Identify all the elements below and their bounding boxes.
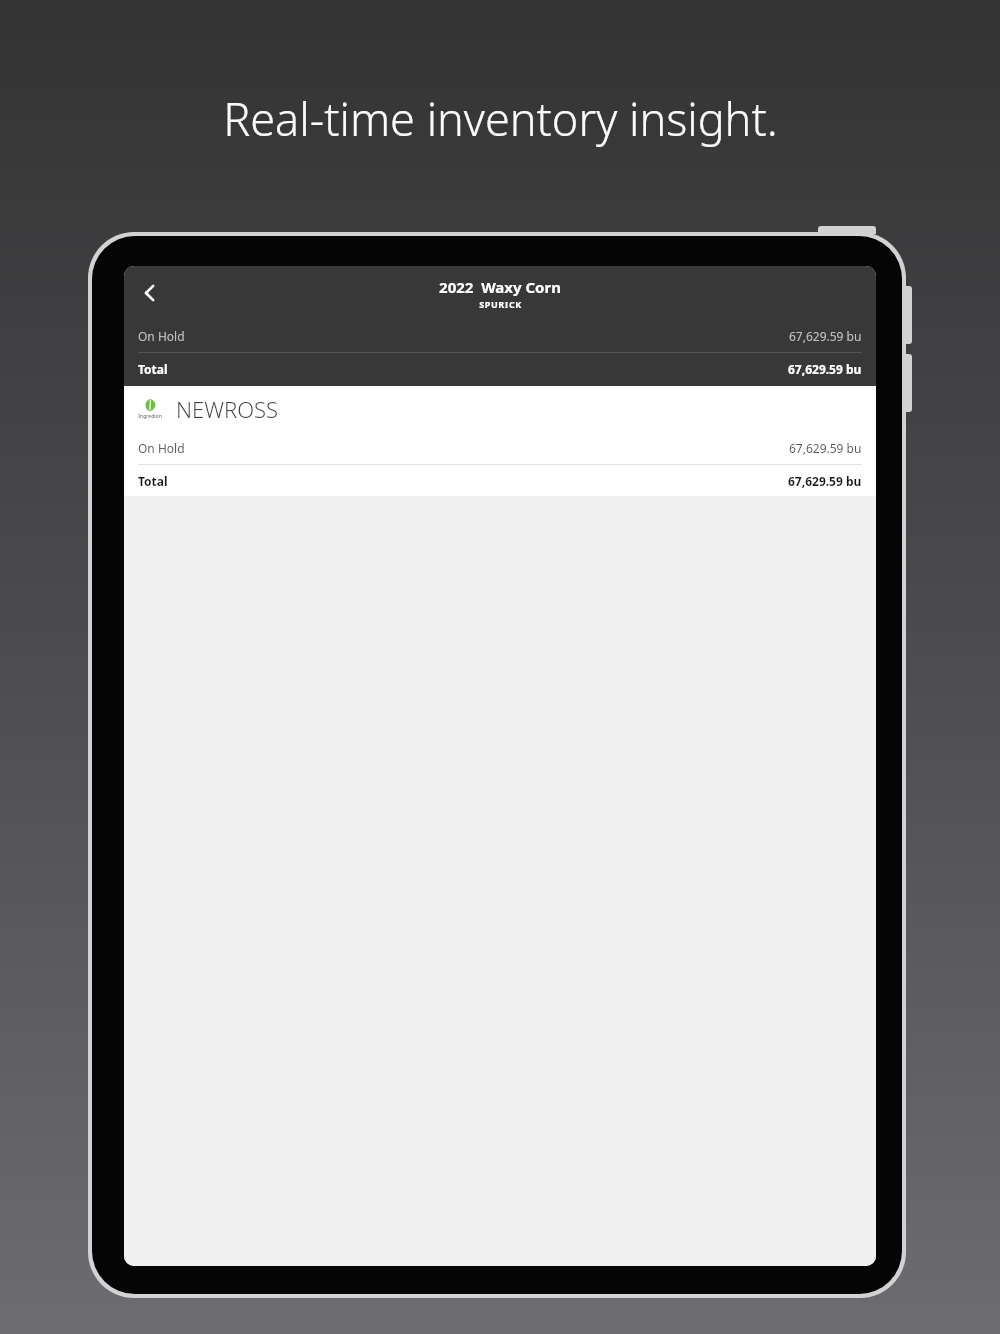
button[interactable]: Back	[128, 271, 172, 315]
staticText: Ingredion	[138, 413, 162, 420]
staticText: 2022 Waxy Corn	[439, 277, 561, 297]
staticText: Real-time inventory insight.	[223, 88, 778, 149]
staticText: SPURICK	[479, 298, 522, 310]
staticText: NEWROSS	[176, 394, 279, 424]
button[interactable]: On Hold	[124, 320, 876, 352]
button[interactable]: On Hold	[124, 432, 876, 464]
staticText: Total	[138, 361, 168, 377]
staticText: On Hold	[138, 440, 185, 456]
button[interactable]: Total	[124, 465, 876, 496]
staticText: On Hold	[138, 328, 185, 344]
button[interactable]: Ingredion	[124, 386, 876, 432]
staticText: 67,629.59 bu	[788, 473, 862, 489]
staticText: 67,629.59 bu	[789, 328, 862, 344]
staticText: Total	[138, 473, 168, 489]
button[interactable]: Total	[124, 353, 876, 385]
staticText: 67,629.59 bu	[788, 361, 862, 377]
staticText: 67,629.59 bu	[789, 440, 862, 456]
